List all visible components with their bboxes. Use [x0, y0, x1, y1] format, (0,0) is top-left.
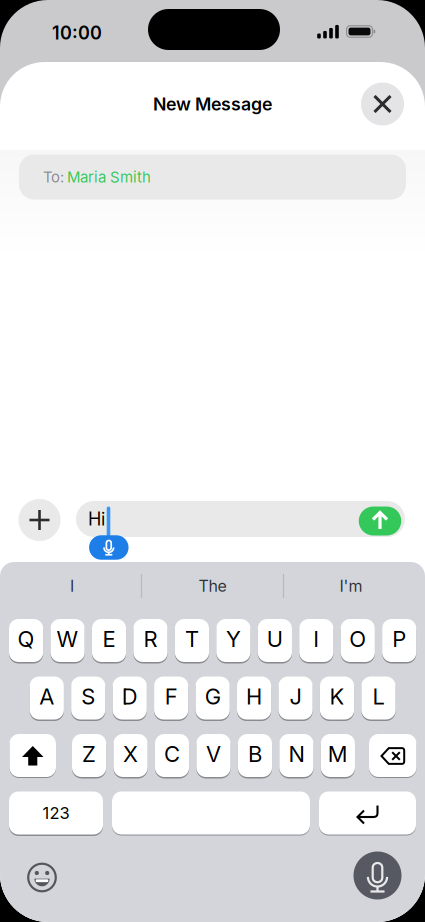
staticText: The	[198, 576, 226, 596]
button[interactable]: Dictation	[89, 535, 128, 560]
button[interactable]: J	[278, 676, 313, 720]
button[interactable]: K	[320, 676, 354, 720]
button[interactable]: I	[7, 566, 137, 606]
button[interactable]: G	[195, 676, 230, 720]
staticText: T	[185, 626, 199, 652]
button[interactable]: R	[133, 619, 168, 663]
button[interactable]: U	[258, 619, 292, 663]
staticText: X	[123, 741, 138, 767]
button[interactable]: N	[279, 734, 313, 778]
button[interactable]: Send	[359, 506, 401, 535]
button[interactable]: T	[175, 619, 209, 663]
button[interactable]: M	[321, 734, 355, 778]
staticText: New Message	[153, 93, 272, 115]
button[interactable]: Y	[216, 619, 250, 663]
button[interactable]: Q	[9, 619, 43, 663]
staticText: D	[122, 683, 138, 710]
button[interactable]: Return	[319, 791, 416, 835]
button[interactable]: To:	[19, 154, 406, 199]
staticText: V	[206, 741, 221, 767]
staticText: R	[143, 626, 157, 652]
staticText: P	[392, 626, 406, 652]
button[interactable]: 123	[9, 791, 103, 835]
button[interactable]: Hi	[76, 501, 405, 537]
staticText: 10:00	[52, 22, 102, 44]
button[interactable]: L	[361, 676, 396, 720]
staticText: M	[328, 741, 348, 767]
staticText: L	[372, 683, 384, 710]
button[interactable]: Space	[112, 791, 310, 835]
staticText: Y	[226, 626, 241, 652]
staticText: I'm	[339, 576, 362, 596]
staticText: I	[313, 626, 319, 652]
button[interactable]: B	[238, 734, 272, 778]
button[interactable]: Delete	[369, 734, 416, 778]
staticText: U	[267, 626, 283, 652]
staticText: To:	[43, 168, 64, 186]
staticText: K	[329, 683, 344, 710]
staticText: Z	[82, 741, 96, 767]
staticText: F	[165, 683, 178, 710]
staticText: C	[164, 741, 180, 767]
staticText: A	[39, 683, 54, 710]
staticText: Maria Smith	[67, 168, 151, 186]
staticText: H	[246, 683, 262, 710]
button[interactable]: C	[155, 734, 189, 778]
staticText: Q	[18, 626, 35, 652]
button[interactable]: Add attachment	[18, 499, 60, 541]
staticText: O	[349, 626, 366, 652]
button[interactable]: F	[154, 676, 188, 720]
staticText: G	[205, 683, 221, 710]
button[interactable]: S	[71, 676, 105, 720]
button[interactable]: I	[299, 619, 333, 663]
staticText: N	[288, 741, 304, 767]
button[interactable]: H	[237, 676, 271, 720]
staticText: E	[102, 626, 115, 652]
button[interactable]: Shift	[9, 734, 56, 778]
button[interactable]: W	[50, 619, 85, 663]
button[interactable]: O	[341, 619, 375, 663]
button[interactable]: E	[92, 619, 126, 663]
button[interactable]: Dictate	[353, 851, 401, 899]
button[interactable]: Close	[361, 82, 404, 125]
button[interactable]: Z	[72, 734, 106, 778]
button[interactable]: V	[196, 734, 231, 778]
button[interactable]: D	[113, 676, 147, 720]
button[interactable]: I'm	[286, 566, 416, 606]
staticText: 123	[42, 803, 69, 823]
button[interactable]: P	[382, 619, 416, 663]
button[interactable]: The	[147, 566, 277, 606]
staticText: S	[81, 683, 95, 710]
staticText: Hi	[88, 508, 105, 530]
staticText: J	[290, 683, 302, 710]
button[interactable]: X	[113, 734, 148, 778]
button[interactable]: Emoji	[26, 861, 58, 893]
button[interactable]: A	[30, 676, 64, 720]
staticText: I	[70, 576, 74, 596]
staticText: B	[248, 741, 262, 767]
staticText: W	[57, 626, 79, 652]
